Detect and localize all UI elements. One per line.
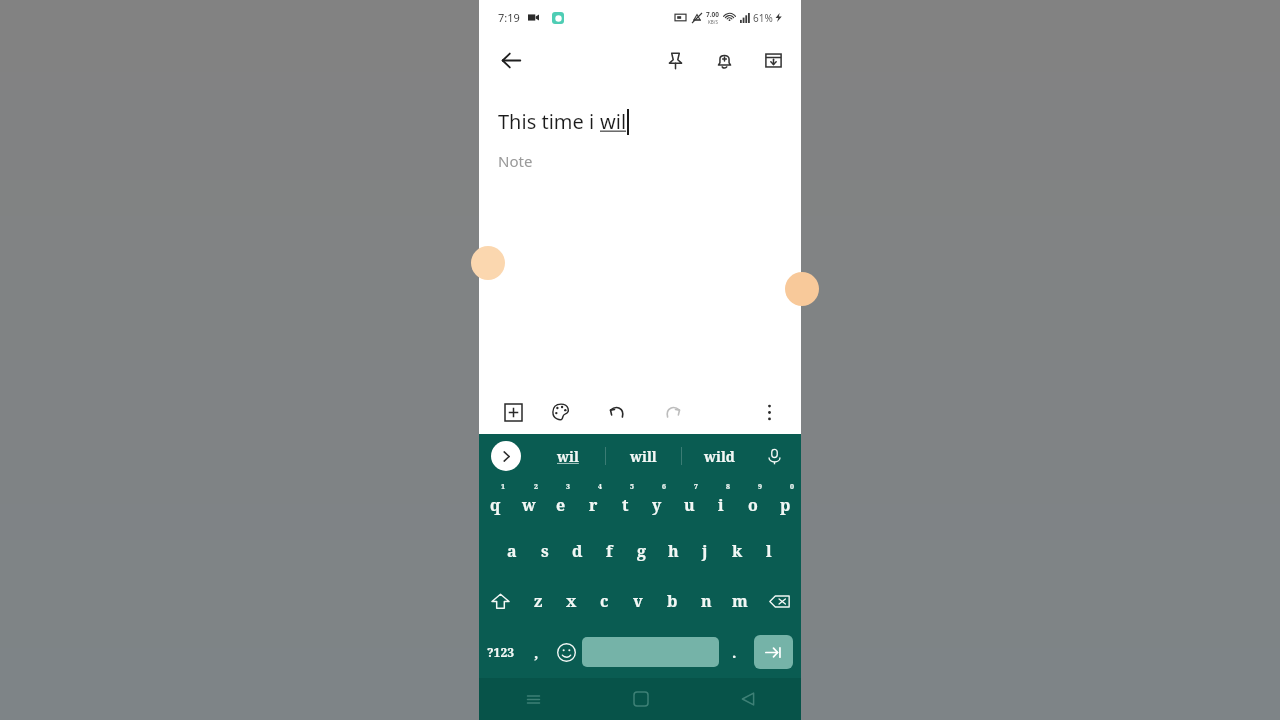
staticText: wil	[557, 447, 579, 466]
staticText: f	[606, 540, 613, 562]
staticText: z	[534, 590, 543, 612]
staticText: 9	[758, 482, 762, 492]
staticText: x	[566, 590, 577, 612]
button[interactable]: Home	[587, 678, 694, 720]
button[interactable]: Space	[582, 637, 719, 667]
staticText: t	[622, 494, 629, 516]
button[interactable]: Undo	[597, 392, 637, 432]
staticText: o	[748, 494, 758, 516]
button[interactable]: f	[593, 526, 625, 576]
staticText: KB/S	[708, 19, 718, 25]
button[interactable]: x	[555, 576, 588, 626]
staticText: s	[541, 540, 549, 562]
button[interactable]: k	[721, 526, 753, 576]
staticText: b	[667, 590, 678, 612]
staticText: 5	[630, 482, 634, 492]
button[interactable]: Voice input	[757, 439, 791, 473]
button[interactable]: j	[689, 526, 721, 576]
staticText: i	[718, 494, 724, 516]
staticText: 8	[726, 482, 730, 492]
staticText: e	[556, 494, 566, 516]
staticText: 7:19	[498, 10, 520, 25]
button[interactable]: Back	[491, 40, 531, 80]
staticText: g	[637, 540, 646, 562]
button[interactable]: 2	[512, 478, 545, 526]
button[interactable]: wil	[531, 434, 605, 478]
staticText: h	[668, 540, 679, 562]
button[interactable]: 9	[737, 478, 769, 526]
button[interactable]: ,	[522, 626, 550, 678]
button[interactable]: wild	[682, 434, 757, 478]
button[interactable]: ?123	[479, 626, 522, 678]
staticText: j	[702, 540, 708, 562]
button[interactable]: Enter	[754, 635, 793, 669]
staticText: 3	[566, 482, 570, 492]
staticText: 2	[534, 482, 538, 492]
staticText: y	[652, 494, 662, 516]
staticText: wild	[704, 447, 735, 466]
button[interactable]: 3	[545, 478, 577, 526]
button[interactable]: 4	[577, 478, 609, 526]
button[interactable]: v	[621, 576, 655, 626]
staticText: .	[732, 642, 737, 662]
button[interactable]: z	[522, 576, 555, 626]
staticText: 7.00	[706, 10, 719, 19]
button[interactable]: d	[561, 526, 593, 576]
button[interactable]: Emoji	[550, 626, 582, 678]
button[interactable]: Reminder	[704, 40, 744, 80]
staticText: l	[766, 540, 772, 562]
button[interactable]: g	[625, 526, 657, 576]
button[interactable]: will	[606, 434, 681, 478]
staticText: v	[633, 590, 643, 612]
button[interactable]: Archive	[753, 40, 793, 80]
button[interactable]: Recents	[479, 678, 587, 720]
button[interactable]: l	[753, 526, 785, 576]
staticText: n	[701, 590, 712, 612]
button[interactable]: m	[723, 576, 757, 626]
staticText: u	[684, 494, 695, 516]
button[interactable]: 6	[641, 478, 673, 526]
button[interactable]: Back	[694, 678, 801, 720]
button[interactable]: h	[657, 526, 689, 576]
button[interactable]: a	[495, 526, 528, 576]
staticText: will	[630, 447, 657, 466]
staticText: 4	[598, 482, 602, 492]
button[interactable]: 5	[609, 478, 641, 526]
button[interactable]: More options	[749, 392, 789, 432]
staticText: wil	[600, 108, 627, 135]
staticText: p	[780, 494, 791, 516]
staticText: d	[572, 540, 583, 562]
staticText: c	[600, 590, 609, 612]
button[interactable]: Palette	[541, 392, 581, 432]
button[interactable]: Redo	[653, 392, 693, 432]
staticText: ?123	[487, 644, 514, 660]
button[interactable]: Expand	[491, 441, 521, 471]
staticText: 6	[662, 482, 666, 492]
staticText: w	[522, 494, 536, 516]
button[interactable]: c	[588, 576, 621, 626]
button[interactable]: Pin	[655, 40, 695, 80]
staticText: 1	[501, 482, 505, 492]
button[interactable]: 8	[705, 478, 737, 526]
button[interactable]: b	[655, 576, 689, 626]
button[interactable]: .	[719, 626, 749, 678]
button[interactable]: 0	[769, 478, 801, 526]
button[interactable]: 1	[479, 478, 512, 526]
button[interactable]: Shift	[479, 576, 522, 626]
button[interactable]: n	[689, 576, 723, 626]
staticText: Note	[498, 151, 533, 171]
staticText: 61%	[753, 11, 773, 25]
staticText: k	[732, 540, 743, 562]
button[interactable]: 7	[673, 478, 705, 526]
staticText: 0	[790, 482, 794, 492]
staticText: ,	[534, 642, 539, 662]
staticText: m	[732, 590, 748, 612]
staticText: r	[589, 494, 598, 516]
button[interactable]: Add	[493, 392, 533, 432]
staticText: a	[507, 540, 517, 562]
staticText: q	[490, 494, 501, 516]
staticText: This time i	[498, 108, 600, 135]
button[interactable]: s	[528, 526, 561, 576]
staticText: 7	[694, 482, 698, 492]
button[interactable]: Backspace	[757, 576, 801, 626]
